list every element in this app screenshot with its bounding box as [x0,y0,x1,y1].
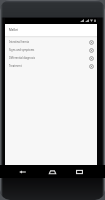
staticText: Melkri [9,28,19,32]
staticText: Signs and symptoms [9,48,89,52]
button[interactable]: Back [16,165,28,178]
button[interactable]: Treatment [5,62,97,70]
button[interactable]: Differential diagnosis [5,54,97,62]
staticText: Intestinal hernia [9,40,89,44]
button[interactable]: Signs and symptoms [5,46,97,54]
staticText: Treatment [9,64,89,68]
button[interactable]: Recent apps [73,165,85,178]
button[interactable]: Home [46,165,58,178]
button[interactable]: Intestinal hernia [5,38,97,46]
staticText: Differential diagnosis [9,56,89,60]
